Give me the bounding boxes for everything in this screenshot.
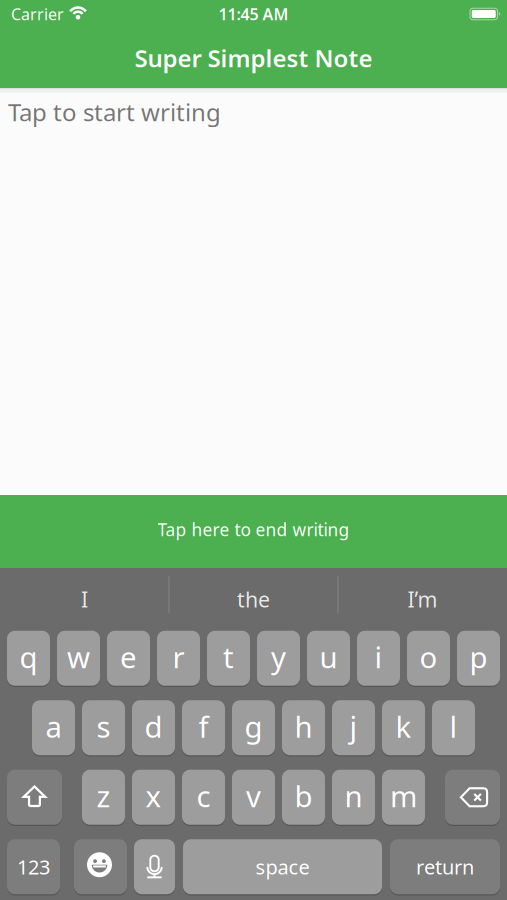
staticText: d (144, 707, 162, 746)
button[interactable]: y (257, 631, 300, 686)
button[interactable]: n (332, 770, 375, 825)
button[interactable]: k (382, 700, 425, 755)
button[interactable]: m (382, 770, 425, 825)
button[interactable]: d (132, 700, 175, 755)
staticText: Tap to start writing (8, 96, 221, 128)
button[interactable]: z (82, 770, 125, 825)
staticText: return (416, 853, 474, 880)
button[interactable]: a (32, 700, 75, 755)
staticText: z (96, 776, 110, 815)
staticText: l (449, 707, 457, 746)
staticText: Tap here to end writing (157, 518, 349, 541)
button[interactable]: w (57, 631, 100, 686)
button[interactable]: p (457, 631, 500, 686)
button[interactable]: u (307, 631, 350, 686)
staticText: b (294, 776, 312, 815)
staticText: e (120, 637, 137, 676)
staticText: the (237, 585, 270, 613)
staticText: p (469, 637, 487, 676)
button[interactable] (445, 770, 500, 825)
staticText: I (81, 585, 88, 613)
staticText: c (196, 776, 210, 815)
staticText: Carrier (11, 3, 64, 25)
staticText: s (96, 707, 110, 746)
staticText: r (172, 637, 184, 676)
button[interactable]: 123 (7, 839, 60, 894)
button[interactable]: s (82, 700, 125, 755)
staticText: y (271, 637, 286, 676)
staticText: t (223, 637, 234, 676)
button[interactable]: the (169, 566, 338, 626)
button[interactable]: o (407, 631, 450, 686)
button[interactable]: Tap to start writing (0, 88, 507, 495)
staticText: w (67, 637, 90, 676)
staticText: I’m (407, 585, 437, 613)
button[interactable]: l (432, 700, 475, 755)
staticText: a (45, 707, 61, 746)
staticText: k (395, 707, 411, 746)
button[interactable]: x (132, 770, 175, 825)
button[interactable]: e (107, 631, 150, 686)
button[interactable]: v (232, 770, 275, 825)
staticText: f (198, 707, 208, 746)
staticText: q (19, 637, 37, 676)
staticText: x (145, 776, 161, 815)
staticText: m (390, 776, 417, 815)
button[interactable]: I’m (338, 566, 507, 626)
button[interactable]: j (332, 700, 375, 755)
button[interactable] (74, 839, 127, 894)
button[interactable]: return (390, 839, 500, 894)
button[interactable]: Tap here to end writing (0, 495, 507, 568)
button[interactable]: b (282, 770, 325, 825)
staticText: 123 (17, 853, 50, 880)
button[interactable]: c (182, 770, 225, 825)
staticText: h (294, 707, 312, 746)
button[interactable]: f (182, 700, 225, 755)
button[interactable]: t (207, 631, 250, 686)
staticText: 11:45 AM (218, 3, 288, 25)
staticText: o (419, 637, 437, 676)
button[interactable]: space (183, 839, 382, 894)
staticText: Super Simplest Note (134, 42, 372, 74)
button[interactable]: I (0, 566, 169, 626)
staticText: v (246, 776, 261, 815)
staticText: u (319, 637, 337, 676)
button[interactable]: r (157, 631, 200, 686)
button[interactable] (134, 839, 175, 894)
staticText: i (374, 637, 382, 676)
button[interactable]: q (7, 631, 50, 686)
staticText: space (255, 853, 309, 880)
staticText: g (244, 707, 262, 746)
staticText: j (349, 707, 357, 746)
staticText: n (344, 776, 362, 815)
button[interactable] (7, 770, 62, 825)
button[interactable]: i (357, 631, 400, 686)
button[interactable]: g (232, 700, 275, 755)
button[interactable]: h (282, 700, 325, 755)
